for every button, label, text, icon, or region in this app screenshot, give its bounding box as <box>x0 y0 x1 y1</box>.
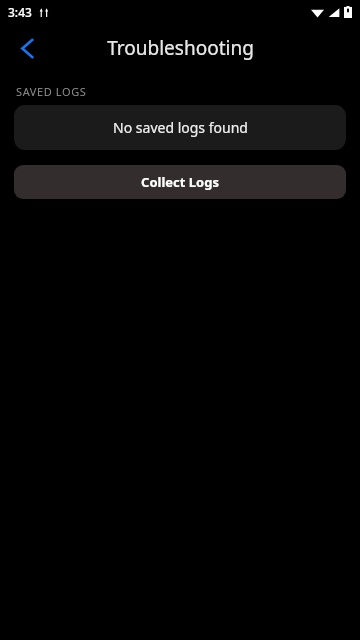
staticText: Collect Logs <box>141 173 219 191</box>
staticText: SAVED LOGS <box>16 84 87 99</box>
button[interactable]: Collect Logs <box>14 165 346 199</box>
staticText: No saved logs found <box>113 118 248 137</box>
button[interactable]: No saved logs found <box>14 105 346 150</box>
staticText: 3:43 <box>8 4 32 20</box>
staticText: Troubleshooting <box>107 35 254 61</box>
button[interactable]: Back <box>9 30 45 66</box>
